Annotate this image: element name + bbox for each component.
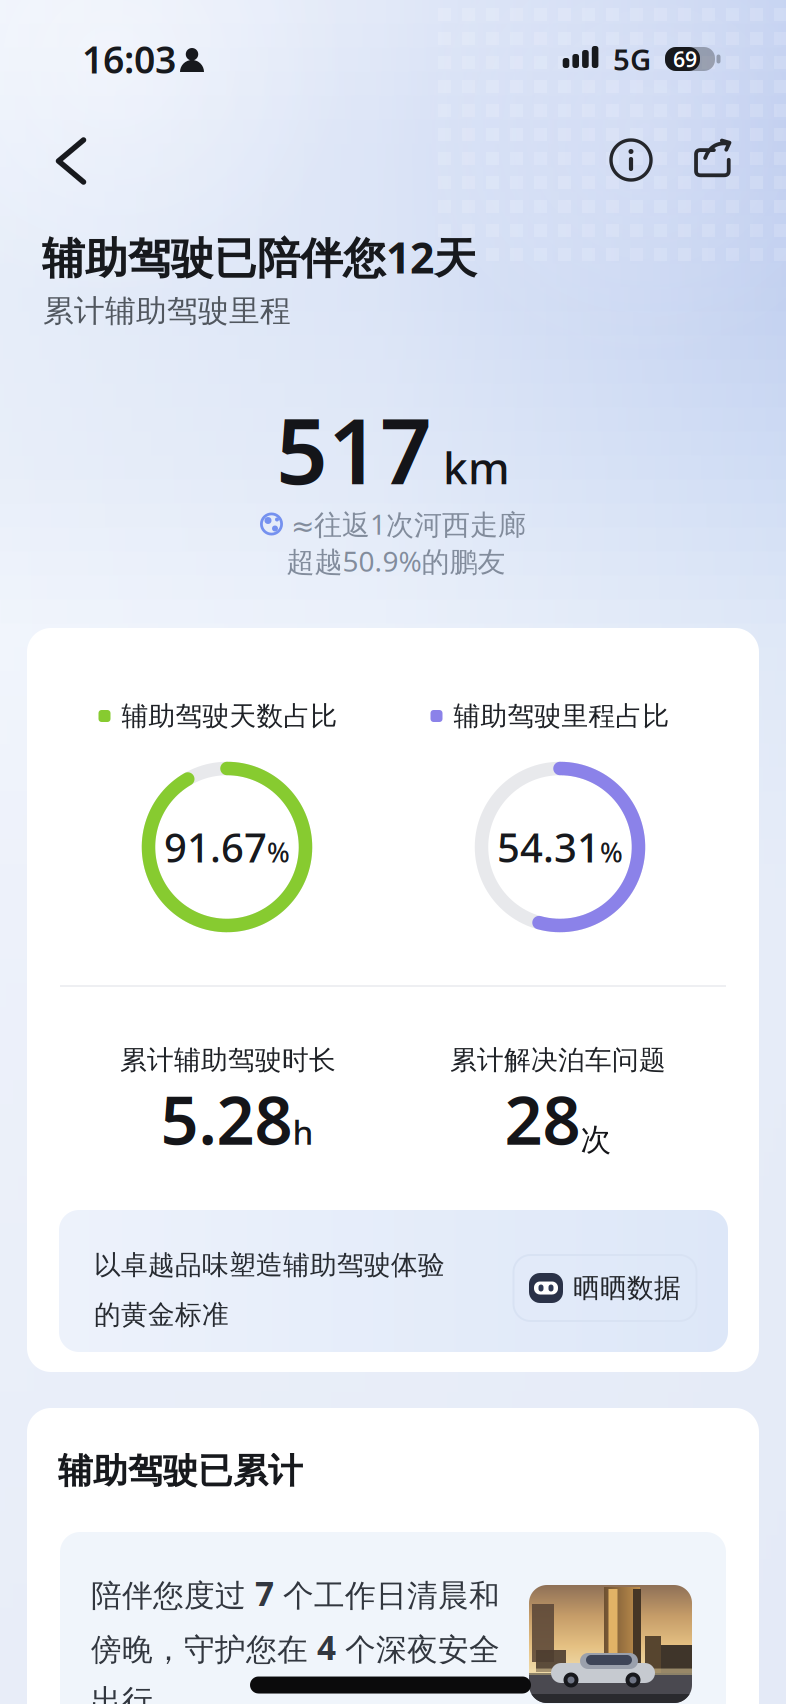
staticText: 辅助驾驶已陪伴您12天 [42, 229, 477, 285]
staticText: 以卓越品味塑造辅助驾驶体验 [94, 1249, 445, 1281]
staticText: 出行 [91, 1682, 153, 1704]
staticText: 陪伴您度过 7 个工作日清晨和 [91, 1571, 500, 1615]
staticText: 69 [673, 45, 697, 73]
staticText: 晒晒数据 [573, 1272, 681, 1304]
staticText: 累计辅助驾驶里程 [43, 292, 291, 330]
staticText: 累计辅助驾驶时长 [120, 1044, 336, 1076]
button[interactable]: Info [611, 140, 651, 180]
staticText: 91.67% [164, 820, 290, 873]
staticText: 517 km [276, 389, 510, 509]
staticText: 辅助驾驶天数占比 [121, 700, 337, 732]
staticText: 28次 [504, 1075, 611, 1163]
staticText: 累计解决泊车问题 [450, 1044, 666, 1076]
button[interactable]: 晒晒数据 [513, 1255, 696, 1321]
button[interactable]: Back [44, 126, 97, 196]
staticText: 5G [613, 39, 651, 78]
staticText: 54.31% [497, 820, 623, 873]
button[interactable]: Share [687, 134, 737, 182]
staticText: ≈往返1次河西走廊 [291, 505, 526, 543]
staticText: 16:03 [82, 34, 176, 84]
staticText: 的黄金标准 [94, 1298, 229, 1331]
staticText: 5.28h [160, 1075, 313, 1163]
staticText: 傍晚，守护您在 4 个深夜安全 [91, 1625, 500, 1669]
staticText: 超越50.9%的鹏友 [286, 542, 505, 580]
staticText: 辅助驾驶里程占比 [453, 700, 669, 732]
staticText: 辅助驾驶已累计 [58, 1450, 303, 1492]
